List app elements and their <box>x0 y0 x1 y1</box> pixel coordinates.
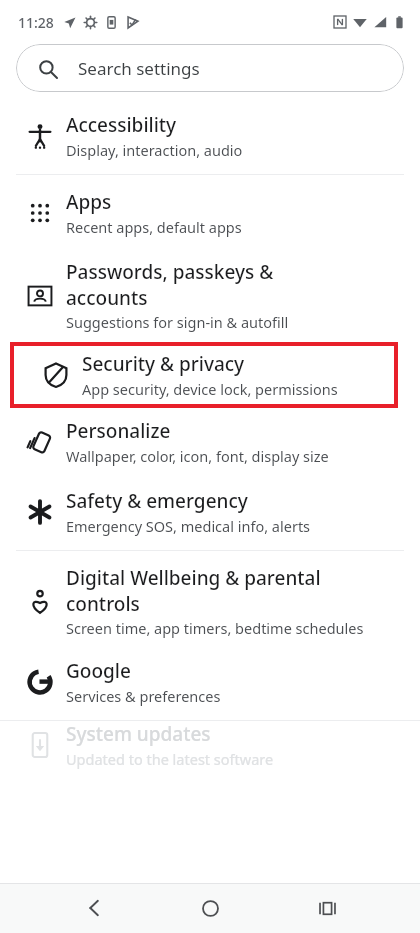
button[interactable]: Search settings <box>16 44 404 92</box>
button[interactable]: Passwords, passkeys & accounts <box>0 259 420 332</box>
staticText: Safety & emergency <box>66 488 248 514</box>
button[interactable]: Google <box>0 658 420 706</box>
staticText: Screen time, app timers, bedtime schedul… <box>66 618 364 638</box>
button[interactable]: Personalize <box>0 418 420 466</box>
button[interactable]: Safety & emergency <box>0 488 420 536</box>
staticText: App security, device lock, permissions <box>82 379 338 399</box>
staticText: Search settings <box>78 57 200 80</box>
staticText: Apps <box>66 189 112 215</box>
staticText: Accessibility <box>66 112 177 138</box>
button[interactable]: Digital Wellbeing & parental controls <box>0 565 420 638</box>
staticText: Wallpaper, color, icon, font, display si… <box>66 446 329 466</box>
button[interactable]: Home <box>192 890 228 926</box>
button[interactable]: Recent apps <box>310 891 344 925</box>
staticText: Personalize <box>66 418 171 444</box>
staticText: System updates <box>66 721 211 747</box>
staticText: Updated to the latest software <box>66 749 274 769</box>
staticText: Passwords, passkeys & accounts <box>66 259 274 310</box>
button[interactable]: Back <box>78 891 112 925</box>
staticText: Services & preferences <box>66 686 221 706</box>
button[interactable]: System updates <box>0 721 420 769</box>
button[interactable]: Apps <box>0 189 420 237</box>
button[interactable]: Accessibility <box>0 112 420 160</box>
staticText: 11:28 <box>18 13 54 32</box>
staticText: Google <box>66 658 131 684</box>
staticText: Emergency SOS, medical info, alerts <box>66 516 311 536</box>
staticText: Recent apps, default apps <box>66 217 242 237</box>
staticText: Digital Wellbeing & parental controls <box>66 565 321 616</box>
staticText: Suggestions for sign-in & autofill <box>66 312 289 332</box>
staticText: Display, interaction, audio <box>66 140 243 160</box>
staticText: Security & privacy <box>82 351 245 377</box>
button[interactable]: Security & privacy <box>10 342 398 408</box>
